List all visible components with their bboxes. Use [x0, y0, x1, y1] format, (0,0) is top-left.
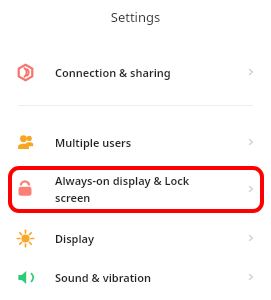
staticText: Display — [55, 231, 95, 246]
other: Open — [246, 233, 256, 243]
other: Open — [246, 184, 256, 194]
button[interactable]: Connection & sharing — [0, 57, 271, 87]
staticText: screen — [55, 190, 91, 205]
button[interactable]: Always-on display & Lock — [0, 170, 271, 208]
staticText: Sound & vibration — [55, 270, 152, 285]
other: Open — [246, 67, 256, 77]
staticText: Multiple users — [55, 135, 132, 150]
button[interactable]: Sound & vibration — [0, 262, 271, 292]
button[interactable]: Multiple users — [0, 127, 271, 157]
other: Open — [246, 272, 256, 282]
button[interactable]: Display — [0, 223, 271, 253]
staticText: Always-on display & Lock — [55, 173, 190, 188]
staticText: Settings — [0, 8, 271, 26]
staticText: Connection & sharing — [55, 65, 171, 80]
other: Open — [246, 137, 256, 147]
